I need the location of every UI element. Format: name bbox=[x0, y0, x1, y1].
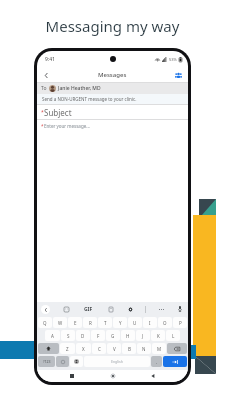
button[interactable]: Q bbox=[38, 317, 52, 328]
button[interactable]: . bbox=[151, 356, 162, 367]
button[interactable]: Settings bbox=[126, 305, 134, 313]
staticText: U bbox=[133, 320, 137, 326]
button[interactable]: F bbox=[91, 330, 105, 341]
staticText: M bbox=[157, 346, 162, 352]
button[interactable]: N bbox=[137, 343, 151, 354]
button[interactable]: Next bbox=[163, 356, 187, 367]
button[interactable]: Z bbox=[60, 343, 75, 354]
button[interactable]: D bbox=[76, 330, 90, 341]
button[interactable]: Contacts bbox=[172, 69, 184, 81]
button[interactable]: U bbox=[128, 317, 142, 328]
button[interactable]: Change language bbox=[70, 356, 83, 367]
staticText: . bbox=[156, 359, 158, 365]
button[interactable]: Recent apps bbox=[67, 371, 77, 381]
staticText: * bbox=[41, 109, 44, 116]
staticText: D bbox=[81, 333, 85, 339]
staticText: English bbox=[111, 359, 123, 364]
button[interactable]: Shift bbox=[38, 343, 59, 354]
button[interactable]: ?123 bbox=[38, 356, 55, 367]
button[interactable]: Back bbox=[41, 305, 50, 314]
button[interactable]: Backspace bbox=[167, 343, 187, 354]
button[interactable]: Clipboard bbox=[107, 305, 115, 313]
button[interactable]: X bbox=[76, 343, 91, 354]
button[interactable]: B bbox=[122, 343, 136, 354]
button[interactable]: Home bbox=[108, 371, 118, 381]
staticText: * bbox=[41, 123, 44, 129]
staticText: A bbox=[51, 333, 54, 339]
button[interactable]: S bbox=[61, 330, 75, 341]
staticText: P bbox=[179, 320, 182, 326]
button[interactable]: Emoji bbox=[56, 356, 69, 367]
staticText: Q bbox=[43, 320, 47, 326]
button[interactable]: J bbox=[136, 330, 150, 341]
button[interactable]: P bbox=[173, 317, 187, 328]
button[interactable]: V bbox=[107, 343, 121, 354]
button[interactable]: I bbox=[143, 317, 157, 328]
staticText: Enter your message... bbox=[44, 123, 90, 129]
button[interactable]: G bbox=[106, 330, 120, 341]
button[interactable]: H bbox=[121, 330, 135, 341]
staticText: O bbox=[163, 320, 167, 326]
staticText: V bbox=[113, 346, 116, 352]
staticText: ?123 bbox=[43, 359, 51, 364]
staticText: N bbox=[142, 346, 146, 352]
button[interactable]: GIF bbox=[82, 304, 95, 315]
button[interactable]: W bbox=[53, 317, 67, 328]
button[interactable]: * bbox=[37, 105, 188, 119]
button[interactable]: O bbox=[158, 317, 172, 328]
staticText: G bbox=[111, 333, 115, 339]
staticText: B bbox=[128, 346, 131, 352]
button[interactable]: English bbox=[84, 356, 150, 367]
button[interactable]: C bbox=[92, 343, 106, 354]
button[interactable]: To bbox=[37, 83, 188, 94]
staticText: S bbox=[67, 333, 70, 339]
staticText: 9:41 bbox=[45, 56, 55, 63]
button[interactable]: Stickers bbox=[62, 305, 70, 313]
staticText: Z bbox=[66, 346, 69, 352]
staticText: Messaging my way bbox=[0, 16, 225, 36]
staticText: E bbox=[74, 320, 77, 326]
staticText: Send a NON-URGENT message to your clinic… bbox=[42, 96, 137, 102]
staticText: I bbox=[149, 320, 151, 326]
button[interactable]: * bbox=[37, 120, 188, 131]
staticText: L bbox=[172, 333, 175, 339]
button[interactable]: M bbox=[152, 343, 166, 354]
staticText: Messages bbox=[98, 71, 127, 79]
staticText: J bbox=[142, 333, 144, 339]
button[interactable]: Y bbox=[113, 317, 127, 328]
button[interactable]: R bbox=[83, 317, 97, 328]
button[interactable]: Back bbox=[40, 69, 52, 81]
button[interactable]: A bbox=[45, 330, 60, 341]
staticText: K bbox=[157, 333, 160, 339]
staticText: Janie Heather, MD bbox=[58, 85, 101, 92]
button[interactable]: Voice input bbox=[176, 305, 184, 313]
staticText: C bbox=[98, 346, 101, 352]
staticText: F bbox=[97, 333, 100, 339]
button[interactable]: E bbox=[68, 317, 82, 328]
button[interactable]: K bbox=[151, 330, 165, 341]
staticText: X bbox=[82, 346, 85, 352]
staticText: Y bbox=[119, 320, 122, 326]
staticText: W bbox=[58, 320, 63, 326]
staticText: T bbox=[104, 320, 107, 326]
button[interactable]: T bbox=[98, 317, 112, 328]
button[interactable]: More options bbox=[157, 305, 165, 313]
button[interactable]: L bbox=[166, 330, 180, 341]
button[interactable]: Back bbox=[148, 371, 158, 381]
staticText: 53% bbox=[169, 57, 177, 62]
staticText: Subject bbox=[44, 107, 72, 118]
staticText: H bbox=[126, 333, 130, 339]
staticText: R bbox=[89, 320, 92, 326]
staticText: To bbox=[41, 85, 47, 92]
staticText: GIF bbox=[84, 306, 93, 313]
